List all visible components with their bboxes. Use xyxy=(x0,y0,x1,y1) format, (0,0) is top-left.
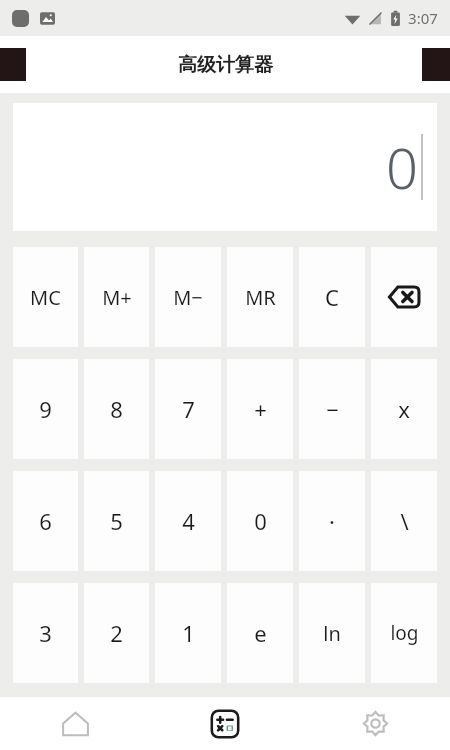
staticText: + xyxy=(254,394,267,424)
staticText: MC xyxy=(30,284,61,311)
button[interactable]: x xyxy=(371,359,437,459)
button[interactable]: MR xyxy=(227,247,293,347)
button[interactable]: M+ xyxy=(84,247,149,347)
button[interactable]: MC xyxy=(13,247,78,347)
button[interactable]: + xyxy=(227,359,293,459)
button[interactable]: 4 xyxy=(155,471,221,571)
button[interactable]: M− xyxy=(155,247,221,347)
staticText: e xyxy=(254,618,267,648)
staticText: ln xyxy=(323,620,341,647)
staticText: M+ xyxy=(102,284,132,311)
staticText: 1 xyxy=(182,618,195,648)
staticText: · xyxy=(329,506,335,536)
button[interactable]: 2 xyxy=(84,583,149,683)
button[interactable]: e xyxy=(227,583,293,683)
staticText: 0 xyxy=(386,129,418,205)
staticText: x xyxy=(398,394,410,424)
button[interactable]: Calculator xyxy=(150,697,300,750)
staticText: 3:07 xyxy=(408,8,438,28)
staticText: log xyxy=(390,620,419,646)
staticText: 2 xyxy=(110,618,123,648)
button[interactable]: 8 xyxy=(84,359,149,459)
staticText: \ xyxy=(400,506,409,536)
staticText: 高级计算器 xyxy=(178,53,273,77)
button[interactable]: 7 xyxy=(155,359,221,459)
button[interactable]: \ xyxy=(371,471,437,571)
staticText: M− xyxy=(173,284,203,311)
button[interactable]: 5 xyxy=(84,471,149,571)
button[interactable]: 0 xyxy=(227,471,293,571)
button[interactable]: ln xyxy=(299,583,365,683)
button[interactable]: Home xyxy=(0,697,150,750)
button[interactable]: · xyxy=(299,471,365,571)
staticText: MR xyxy=(245,284,276,311)
button[interactable]: Settings xyxy=(300,697,450,750)
staticText: 6 xyxy=(39,506,52,536)
staticText: 0 xyxy=(254,506,267,536)
staticText: 8 xyxy=(110,394,123,424)
button[interactable]: 3 xyxy=(13,583,78,683)
button[interactable]: log xyxy=(371,583,437,683)
button[interactable]: 9 xyxy=(13,359,78,459)
button[interactable]: − xyxy=(299,359,365,459)
staticText: 7 xyxy=(182,394,195,424)
staticText: 5 xyxy=(110,506,123,536)
button[interactable]: 6 xyxy=(13,471,78,571)
staticText: C xyxy=(325,282,339,312)
staticText: 9 xyxy=(39,394,52,424)
button[interactable]: C xyxy=(299,247,365,347)
staticText: 4 xyxy=(182,506,195,536)
button[interactable]: 1 xyxy=(155,583,221,683)
staticText: − xyxy=(326,394,339,424)
button[interactable]: Backspace xyxy=(371,247,437,347)
staticText: 3 xyxy=(39,618,52,648)
